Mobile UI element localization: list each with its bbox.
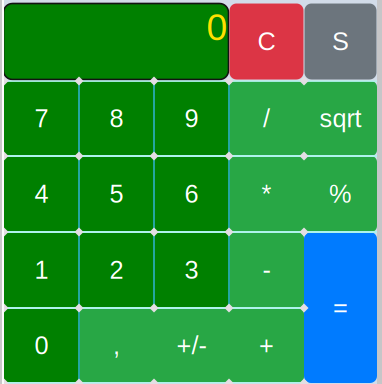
button[interactable]: + bbox=[229, 308, 304, 383]
button[interactable]: +/- bbox=[154, 308, 229, 383]
button[interactable]: Display showing 0 bbox=[3, 3, 228, 79]
button[interactable]: - bbox=[229, 232, 304, 308]
staticText: 2 bbox=[109, 256, 123, 284]
button[interactable]: 9 bbox=[154, 81, 229, 156]
button[interactable]: 2 bbox=[79, 232, 154, 308]
button[interactable]: = bbox=[304, 232, 377, 383]
button[interactable]: % bbox=[304, 156, 377, 232]
staticText: 7 bbox=[34, 104, 48, 133]
staticText: sqrt bbox=[319, 104, 361, 133]
button[interactable]: C bbox=[229, 3, 303, 79]
button[interactable]: 8 bbox=[79, 81, 154, 156]
staticText: +/- bbox=[176, 331, 206, 360]
staticText: % bbox=[329, 180, 352, 208]
staticText: - bbox=[262, 256, 270, 284]
staticText: 5 bbox=[109, 180, 123, 208]
staticText: + bbox=[259, 331, 274, 360]
button[interactable]: 0 bbox=[4, 308, 79, 383]
button[interactable]: 7 bbox=[4, 81, 79, 156]
button[interactable]: sqrt bbox=[304, 81, 377, 156]
staticText: S bbox=[332, 27, 349, 56]
staticText: C bbox=[257, 27, 275, 56]
staticText: 9 bbox=[184, 104, 198, 133]
staticText: 0 bbox=[206, 6, 227, 48]
button[interactable]: S bbox=[304, 3, 376, 79]
staticText: 6 bbox=[184, 180, 198, 208]
button[interactable]: , bbox=[79, 308, 154, 383]
staticText: 4 bbox=[34, 180, 48, 208]
staticText: / bbox=[263, 104, 270, 133]
staticText: 8 bbox=[109, 104, 123, 133]
staticText: * bbox=[261, 180, 271, 208]
button[interactable]: / bbox=[229, 81, 304, 156]
staticText: = bbox=[333, 293, 348, 322]
button[interactable]: 1 bbox=[4, 232, 79, 308]
staticText: 3 bbox=[184, 256, 198, 284]
staticText: 0 bbox=[34, 331, 48, 360]
staticText: , bbox=[113, 331, 120, 360]
button[interactable]: 3 bbox=[154, 232, 229, 308]
button[interactable]: 4 bbox=[4, 156, 79, 232]
button[interactable]: 5 bbox=[79, 156, 154, 232]
button[interactable]: 6 bbox=[154, 156, 229, 232]
staticText: 1 bbox=[34, 256, 48, 284]
button[interactable]: * bbox=[229, 156, 304, 232]
